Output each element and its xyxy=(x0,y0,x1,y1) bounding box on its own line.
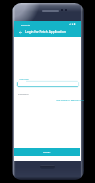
button[interactable]: Password xyxy=(18,93,80,99)
staticText: LOGIN xyxy=(43,151,51,154)
staticText: Password xyxy=(18,93,29,96)
staticText: 5:34 PM xyxy=(21,23,30,26)
staticText: Username xyxy=(19,78,29,81)
button[interactable]: LOGIN xyxy=(14,148,80,156)
staticText: Login for Fetch Application xyxy=(25,30,66,34)
button[interactable] xyxy=(17,81,79,87)
button[interactable]: Back xyxy=(16,27,25,37)
button[interactable]: New Student ? Register Here xyxy=(56,99,84,102)
